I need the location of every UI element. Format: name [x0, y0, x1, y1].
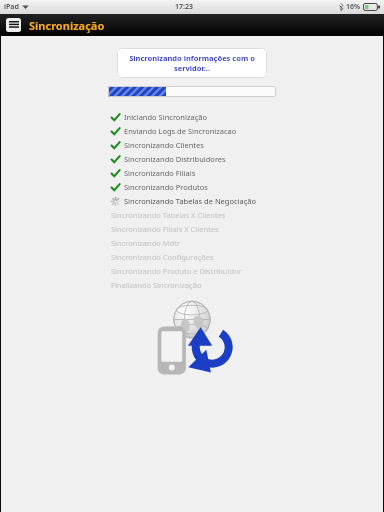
- staticText: Sincronizando Distribuidores: [124, 154, 226, 164]
- staticText: Enviando Logs de Sincronizacao: [124, 126, 237, 136]
- button[interactable]: Menu: [6, 18, 21, 32]
- staticText: 16%: [346, 2, 361, 12]
- staticText: Finalizando Sincronização: [111, 280, 202, 290]
- staticText: Sincronizando Produtos: [124, 182, 208, 192]
- staticText: Sincronização: [29, 18, 105, 33]
- staticText: iPad: [4, 2, 19, 12]
- staticText: 17:23: [175, 2, 193, 12]
- staticText: Sincronizando Configurações: [111, 252, 214, 262]
- staticText: Sincronizando Filiais X Clientes: [111, 224, 219, 234]
- staticText: Sincronizando Clientes: [124, 140, 204, 150]
- staticText: Sincronizando Tabelas de Negociação: [124, 196, 257, 206]
- button[interactable]: Menu: [0, 14, 384, 36]
- staticText: Iniciando Sincronização: [124, 112, 208, 122]
- staticText: Sincronizando Tabelas X Clientes: [111, 210, 226, 220]
- staticText: Sincronizando Produto e Distribuidor: [111, 266, 242, 276]
- staticText: Sincronizando Filiais: [124, 168, 196, 178]
- staticText: Sincronizando informações com o servidor…: [124, 53, 260, 73]
- staticText: Sincronizando Mdtr: [111, 238, 181, 248]
